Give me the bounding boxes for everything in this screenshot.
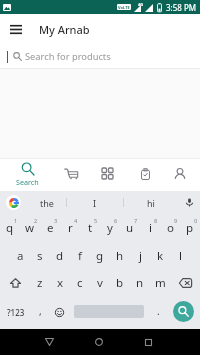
staticText: 1 bbox=[14, 217, 18, 224]
staticText: VoLTE bbox=[118, 5, 130, 10]
staticText: e bbox=[47, 220, 54, 236]
button[interactable]: hi bbox=[124, 191, 178, 214]
staticText: m bbox=[155, 275, 166, 291]
staticText: 4G bbox=[138, 2, 144, 7]
staticText: , bbox=[39, 304, 42, 318]
button[interactable]: Emoji bbox=[49, 296, 70, 329]
staticText: n bbox=[136, 275, 144, 291]
button[interactable]: . bbox=[148, 296, 168, 329]
button[interactable]: Backspace bbox=[170, 269, 200, 296]
staticText: z bbox=[37, 275, 43, 291]
button[interactable]: i bbox=[140, 214, 160, 242]
staticText: d bbox=[56, 248, 64, 264]
button[interactable]: Voice input bbox=[178, 191, 200, 214]
button[interactable]: Cart bbox=[52, 158, 90, 191]
button[interactable]: Search bbox=[168, 296, 198, 329]
button[interactable]: Categories bbox=[90, 158, 124, 191]
button[interactable]: z bbox=[30, 269, 50, 296]
staticText: 7 bbox=[134, 217, 138, 224]
button[interactable]: q bbox=[0, 214, 20, 242]
button[interactable]: Orders bbox=[128, 158, 162, 191]
button[interactable]: n bbox=[130, 269, 150, 296]
staticText: r bbox=[68, 220, 73, 236]
button[interactable]: Space bbox=[70, 296, 148, 329]
button[interactable]: g bbox=[90, 242, 110, 269]
staticText: l bbox=[179, 248, 182, 264]
button[interactable]: m bbox=[150, 269, 170, 296]
staticText: w bbox=[25, 220, 35, 236]
button[interactable]: ?123 bbox=[0, 296, 31, 329]
staticText: Search for products bbox=[25, 50, 111, 63]
staticText: h bbox=[116, 248, 124, 264]
button[interactable]: h bbox=[110, 242, 130, 269]
staticText: . bbox=[157, 304, 160, 318]
staticText: v bbox=[97, 275, 103, 291]
button[interactable]: Google search bbox=[6, 195, 21, 210]
staticText: i bbox=[149, 220, 152, 236]
staticText: the bbox=[40, 197, 54, 209]
staticText: 2 bbox=[34, 217, 38, 224]
button[interactable]: u bbox=[120, 214, 140, 242]
button[interactable]: e bbox=[40, 214, 60, 242]
staticText: 6 bbox=[114, 217, 118, 224]
button[interactable]: s bbox=[30, 242, 50, 269]
staticText: 3:58 PM bbox=[166, 2, 197, 13]
staticText: 0 bbox=[194, 217, 198, 224]
button[interactable]: a bbox=[10, 242, 30, 269]
staticText: hi bbox=[147, 197, 155, 209]
button[interactable]: r bbox=[60, 214, 80, 242]
staticText: t bbox=[88, 220, 93, 236]
button[interactable]: o bbox=[160, 214, 180, 242]
staticText: I bbox=[93, 197, 97, 209]
staticText: p bbox=[186, 220, 194, 236]
staticText: u bbox=[126, 220, 134, 236]
button[interactable]: the bbox=[28, 191, 66, 214]
staticText: ?123 bbox=[7, 307, 25, 318]
staticText: f bbox=[78, 248, 82, 264]
button[interactable]: Shift bbox=[0, 269, 30, 296]
staticText: 9 bbox=[174, 217, 178, 224]
button[interactable]: y bbox=[100, 214, 120, 242]
staticText: k bbox=[157, 248, 164, 264]
staticText: g bbox=[96, 248, 104, 264]
staticText: 5 bbox=[94, 217, 98, 224]
button[interactable]: Account bbox=[163, 158, 197, 191]
staticText: s bbox=[37, 248, 43, 264]
button[interactable]: Back bbox=[38, 331, 60, 353]
button[interactable]: p bbox=[180, 214, 200, 242]
staticText: x bbox=[57, 275, 64, 291]
button[interactable]: k bbox=[150, 242, 170, 269]
button[interactable]: t bbox=[80, 214, 100, 242]
button[interactable]: d bbox=[50, 242, 70, 269]
button[interactable]: Home bbox=[88, 331, 110, 353]
button[interactable]: w bbox=[20, 214, 40, 242]
button[interactable]: v bbox=[90, 269, 110, 296]
button[interactable]: l bbox=[170, 242, 190, 269]
button[interactable]: x bbox=[50, 269, 70, 296]
staticText: a bbox=[17, 248, 24, 264]
button[interactable]: Search bbox=[0, 158, 52, 191]
staticText: 3 bbox=[54, 217, 58, 224]
button[interactable]: I bbox=[67, 191, 123, 214]
button[interactable]: f bbox=[70, 242, 90, 269]
staticText: b bbox=[116, 275, 124, 291]
button[interactable]: b bbox=[110, 269, 130, 296]
button[interactable]: , bbox=[31, 296, 49, 329]
staticText: q bbox=[6, 220, 14, 236]
button[interactable]: j bbox=[130, 242, 150, 269]
staticText: y bbox=[107, 220, 113, 236]
button[interactable]: c bbox=[70, 269, 90, 296]
staticText: 4 bbox=[74, 217, 78, 224]
staticText: 8 bbox=[154, 217, 158, 224]
button[interactable]: Open navigation drawer bbox=[1, 14, 31, 44]
button[interactable]: Recent apps bbox=[137, 331, 159, 353]
staticText: c bbox=[77, 275, 83, 291]
staticText: o bbox=[167, 220, 174, 236]
staticText: My Arnab bbox=[39, 22, 90, 37]
staticText: Search bbox=[16, 177, 39, 187]
staticText: j bbox=[139, 248, 142, 264]
